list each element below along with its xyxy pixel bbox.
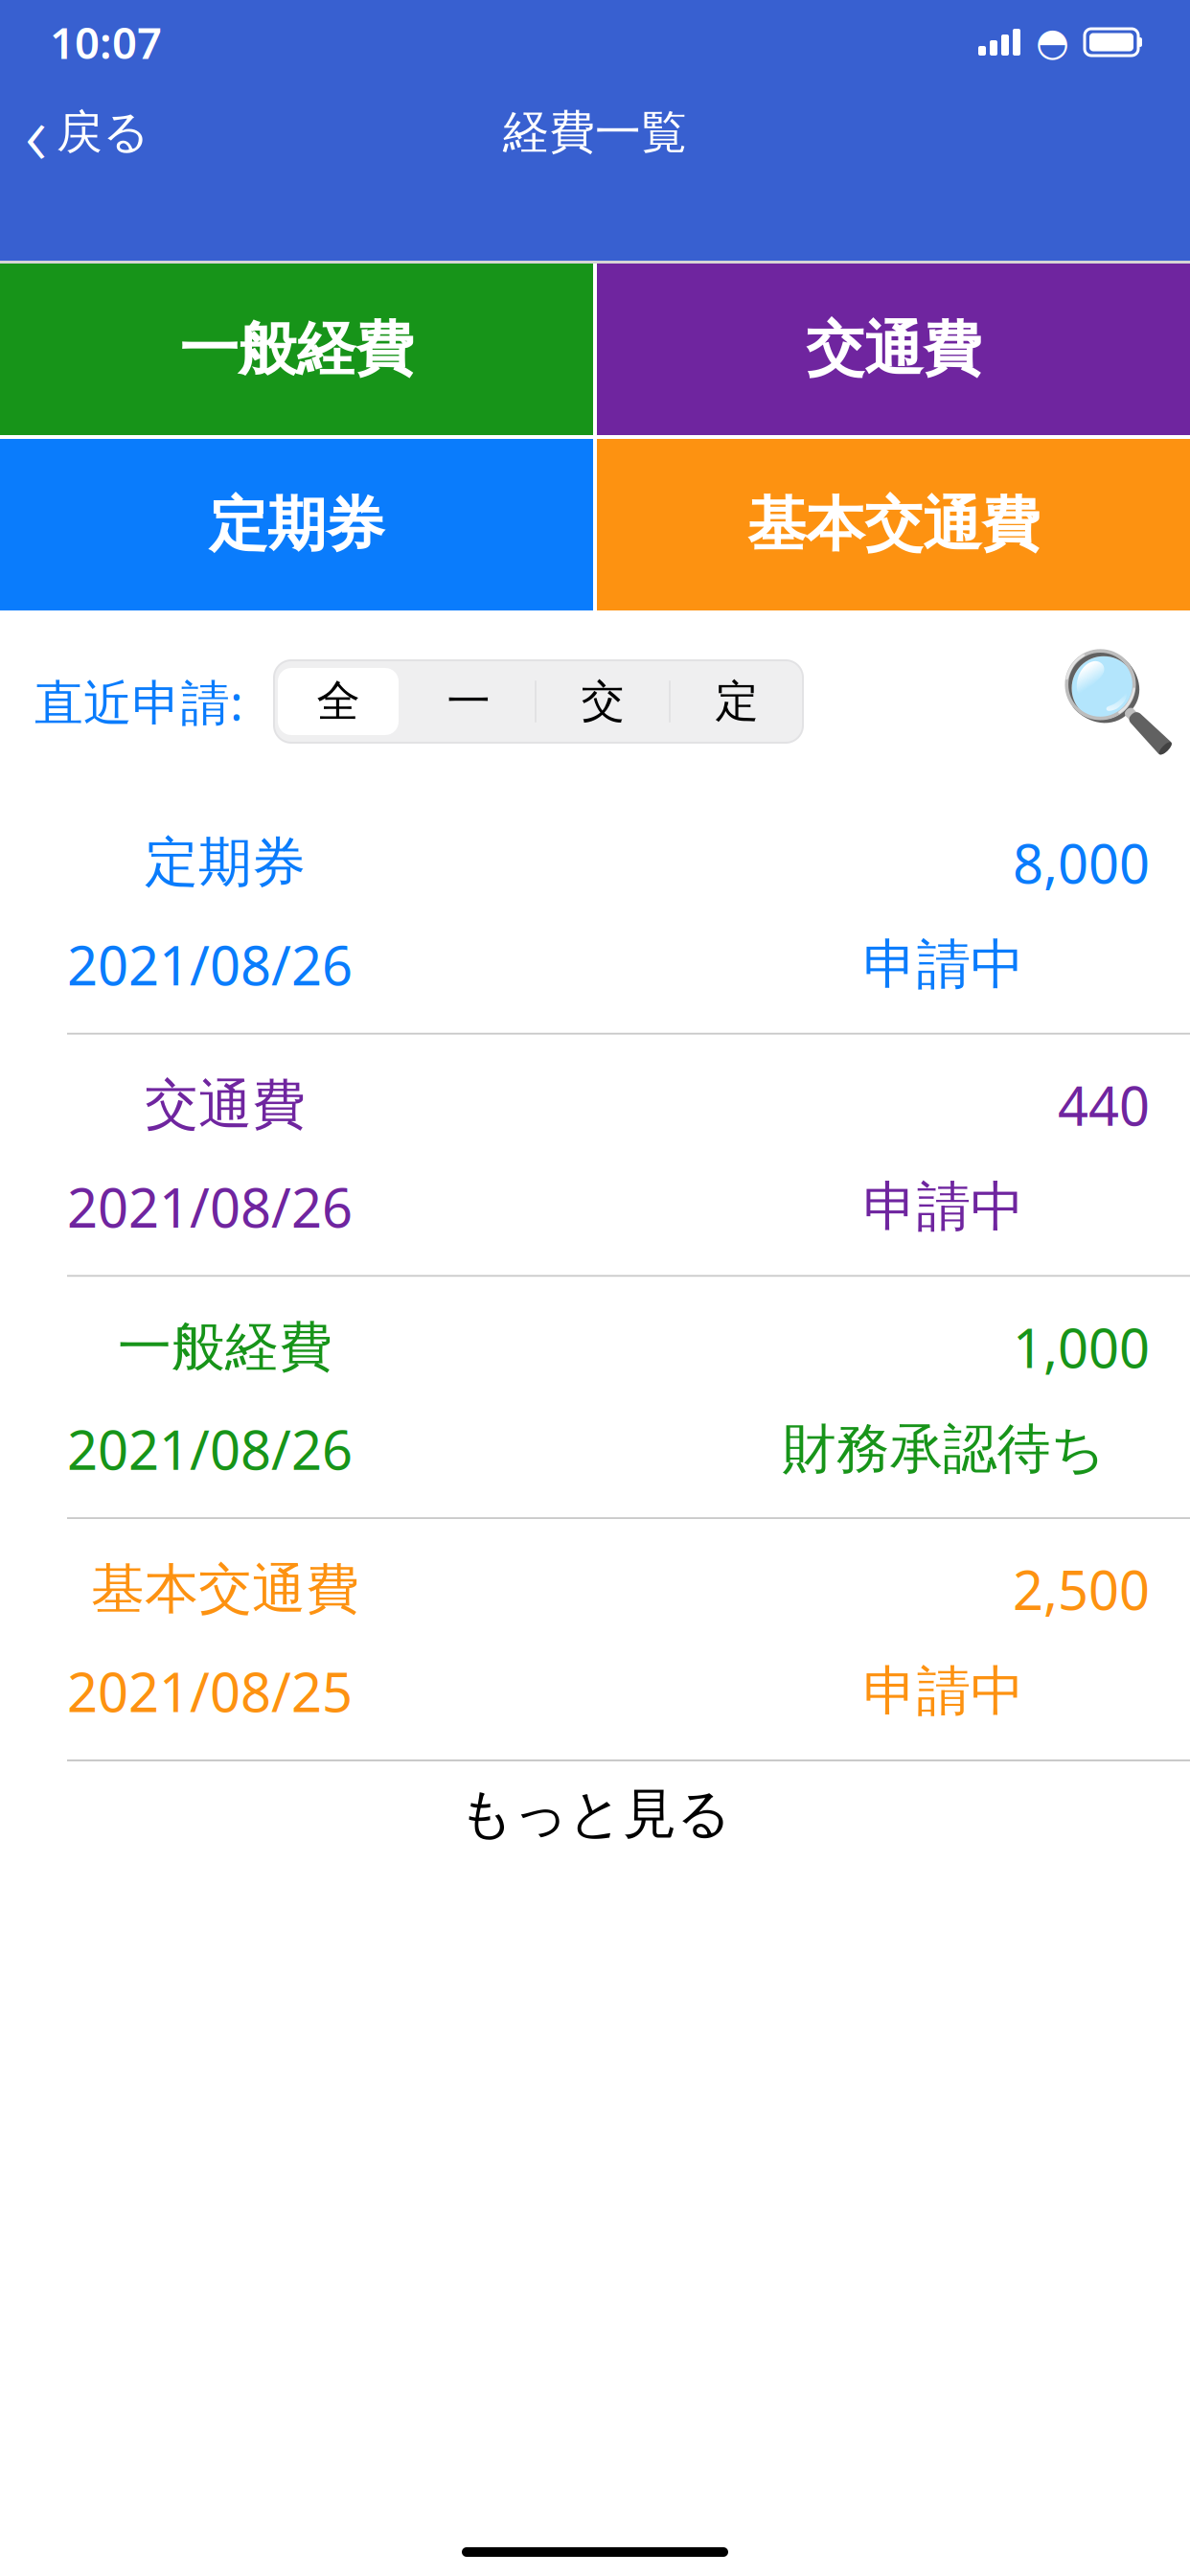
staticText: 定	[715, 675, 758, 728]
staticText: 直近申請:	[34, 669, 243, 734]
button[interactable]: 一般経費	[0, 264, 593, 435]
button[interactable]: 基本交通費	[597, 439, 1190, 610]
staticText: ‹	[25, 76, 47, 188]
staticText: もっと見る	[459, 1781, 731, 1847]
staticText: 2021/08/26	[67, 1171, 353, 1242]
button[interactable]: 一	[402, 664, 535, 739]
staticText: 定期券	[145, 830, 306, 896]
staticText: 申請中	[863, 1174, 1024, 1240]
button[interactable]: 一般経費	[0, 1277, 1190, 1517]
staticText: 一般経費	[180, 313, 413, 385]
staticText: 定期券	[209, 489, 384, 561]
button[interactable]: 定	[671, 664, 803, 739]
staticText: 一般経費	[118, 1314, 332, 1380]
staticText: 440	[1058, 1069, 1150, 1141]
staticText: 🔍	[1058, 646, 1179, 757]
button[interactable]: 定期券	[0, 439, 593, 610]
staticText: 交通費	[145, 1072, 306, 1138]
button[interactable]: もっと見る	[0, 1761, 1190, 1867]
button[interactable]: 検索	[1065, 649, 1171, 754]
staticText: 戻る	[57, 104, 149, 161]
staticText: 10:07	[50, 13, 162, 71]
staticText: 2021/08/26	[67, 1413, 353, 1485]
button[interactable]: 交	[537, 664, 669, 739]
staticText: 2,500	[1013, 1554, 1150, 1625]
staticText: 一	[447, 675, 490, 728]
staticText: 基本交通費	[747, 489, 1040, 561]
staticText: 財務承認待ち	[782, 1416, 1105, 1482]
button[interactable]: 交通費	[597, 264, 1190, 435]
staticText: 申請中	[863, 932, 1024, 998]
staticText: 8,000	[1013, 827, 1150, 898]
staticText: 基本交通費	[91, 1556, 359, 1622]
staticText: ◓	[1036, 20, 1069, 64]
button[interactable]: 基本交通費	[0, 1519, 1190, 1759]
button[interactable]: 全	[278, 668, 399, 735]
staticText: 2021/08/25	[67, 1656, 353, 1727]
staticText: 交	[581, 675, 624, 728]
button[interactable]: 交通費	[0, 1035, 1190, 1275]
button[interactable]: ‹	[0, 69, 174, 196]
staticText: 全	[317, 675, 360, 728]
staticText: 経費一覧	[503, 104, 687, 161]
staticText: 2021/08/26	[67, 929, 353, 1000]
staticText: 交通費	[806, 313, 981, 385]
button[interactable]: 定期券	[0, 793, 1190, 1033]
staticText: 申請中	[863, 1658, 1024, 1724]
staticText: 1,000	[1013, 1311, 1150, 1383]
